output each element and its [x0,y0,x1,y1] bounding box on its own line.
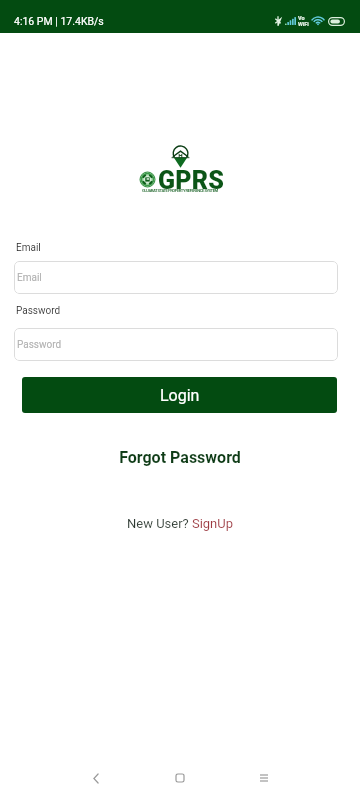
button[interactable]: Email [14,261,338,294]
staticText: Login [160,386,200,405]
button[interactable]: New User? SignUp [0,516,360,531]
staticText: Email [16,242,41,254]
staticText: GPRS [158,166,225,195]
button[interactable]: Forgot Password [0,448,360,467]
staticText: GUJARAT STATE PROPERTY REFERENCE SYSTEM [142,188,218,193]
button[interactable]: Recents [222,758,306,798]
staticText: WiFi [298,21,309,27]
staticText: Password [16,305,61,317]
button[interactable]: Home [138,758,222,798]
staticText: 4:16 PM | 17.4KB/s [14,15,104,27]
button[interactable]: Back [54,758,138,798]
staticText: Vo [298,15,305,21]
staticText: Password [17,339,62,351]
staticText: Email [17,272,42,284]
button[interactable]: Password [14,328,338,361]
button[interactable]: Login [22,377,337,413]
